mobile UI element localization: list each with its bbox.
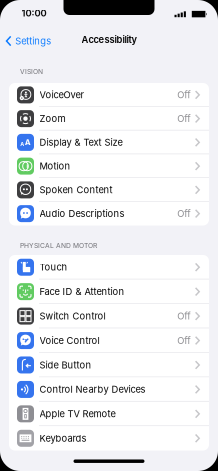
staticText: Face ID & Attention: [39, 286, 124, 297]
button[interactable]: Audio Descriptions: [9, 202, 209, 226]
button[interactable]: Switch Control: [9, 304, 209, 328]
staticText: PHYSICAL AND MOTOR: [20, 242, 97, 249]
staticText: Switch Control: [39, 311, 105, 322]
button[interactable]: Zoom: [9, 107, 209, 131]
button[interactable]: Spoken Content: [9, 178, 209, 202]
staticText: A: [25, 138, 31, 147]
staticText: Settings: [15, 35, 51, 46]
button[interactable]: Voice Control: [9, 328, 209, 353]
button[interactable]: Control Nearby Devices: [9, 377, 209, 402]
staticText: Control Nearby Devices: [39, 384, 145, 395]
staticText: 10:00: [21, 8, 46, 19]
staticText: Off: [177, 113, 190, 124]
staticText: Accessibility: [81, 34, 136, 45]
button[interactable]: Face ID & Attention: [9, 279, 209, 304]
staticText: Spoken Content: [39, 184, 112, 195]
staticText: Apple TV Remote: [39, 408, 115, 419]
button[interactable]: Motion: [9, 154, 209, 178]
staticText: Display & Text Size: [39, 137, 122, 148]
staticText: Off: [177, 335, 190, 346]
staticText: Motion: [39, 161, 70, 172]
staticText: Off: [177, 208, 190, 219]
button[interactable]: Settings: [5, 35, 51, 46]
staticText: Voice Control: [39, 335, 99, 346]
staticText: A: [20, 141, 24, 147]
button[interactable]: Apple TV Remote: [9, 402, 209, 426]
staticText: Off: [177, 311, 190, 322]
button[interactable]: A: [9, 130, 209, 154]
staticText: Side Button: [39, 359, 91, 370]
button[interactable]: Keyboards: [9, 426, 209, 450]
button[interactable]: VoiceOver: [9, 83, 209, 107]
staticText: Touch: [39, 262, 67, 273]
button[interactable]: Touch: [9, 255, 209, 279]
staticText: Keyboards: [39, 433, 86, 444]
button[interactable]: Side Button: [9, 353, 209, 377]
staticText: Off: [177, 89, 190, 100]
staticText: Zoom: [39, 113, 65, 124]
staticText: Audio Descriptions: [39, 208, 124, 219]
staticText: VISION: [20, 68, 43, 75]
staticText: VoiceOver: [39, 89, 84, 100]
